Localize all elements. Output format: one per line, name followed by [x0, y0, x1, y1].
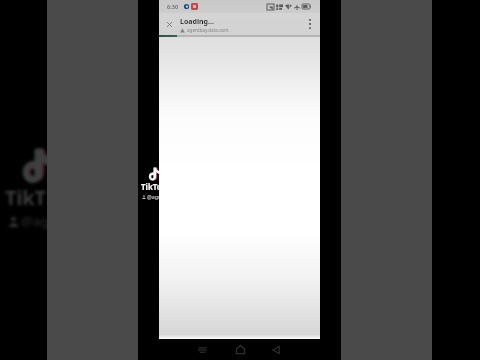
staticText: TikTok [141, 182, 167, 193]
button[interactable]: More options [300, 13, 320, 35]
button[interactable]: Recents [193, 339, 211, 360]
button[interactable]: Home [231, 339, 249, 360]
staticText: agentbay.data.com [187, 27, 229, 33]
button[interactable]: Close [159, 13, 180, 35]
button[interactable]: Back [267, 339, 285, 360]
staticText: 6:30 [167, 3, 179, 11]
staticText: @agentbay [147, 193, 175, 200]
staticText: Loading... [180, 17, 214, 27]
staticText: TikTok [5, 184, 47, 211]
staticText: @agentbay [21, 212, 47, 230]
